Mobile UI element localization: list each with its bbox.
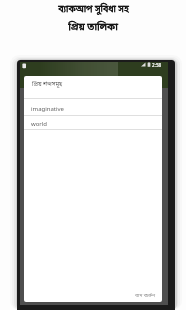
- staticText: বাদ করুন: [135, 292, 156, 299]
- button[interactable]: বাদ করুন: [129, 288, 162, 302]
- staticText: world: [31, 120, 48, 128]
- button[interactable]: world: [24, 115, 162, 128]
- staticText: ব্যাকআপ সুবিধা সহ: [58, 4, 129, 16]
- staticText: প্রিয় তালিকা: [68, 21, 118, 34]
- staticText: imaginative: [31, 105, 64, 113]
- staticText: ব্যাকআপ সুবিধা সহ: [58, 4, 129, 16]
- button[interactable]: প্রিয় শব্দসমূহ: [24, 76, 162, 98]
- staticText: প্রিয় তালিকা: [68, 21, 118, 34]
- staticText: 2:58: [152, 62, 162, 68]
- staticText: প্রিয় শব্দসমূহ: [32, 81, 63, 89]
- button[interactable]: imaginative: [24, 99, 162, 115]
